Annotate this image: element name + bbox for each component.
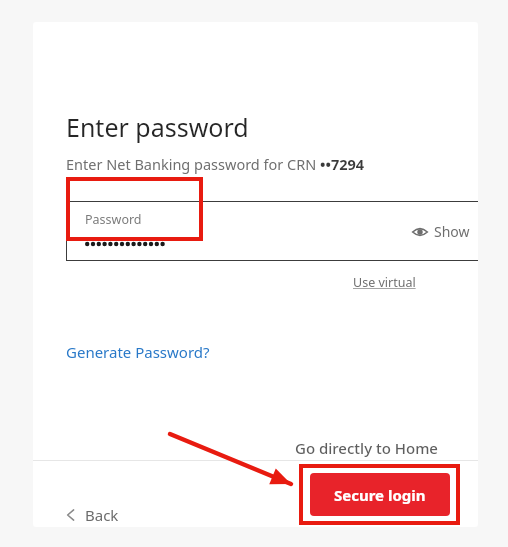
staticText: Password <box>85 211 142 228</box>
staticText: Generate Password? <box>66 342 210 362</box>
button[interactable]: Use virtual keypad <box>353 274 453 294</box>
staticText: Show <box>434 222 470 241</box>
staticText: Use virtual keypad <box>353 274 453 294</box>
staticText: Secure login <box>334 485 426 505</box>
button[interactable]: Generate Password? <box>66 342 210 362</box>
button[interactable]: Password <box>66 201 478 261</box>
button[interactable]: Secure login <box>310 473 450 516</box>
button[interactable]: Go directly to Home <box>295 438 438 458</box>
staticText: Enter Net Banking password for CRN ••729… <box>66 154 365 174</box>
button[interactable]: Show <box>412 222 470 241</box>
staticText: Enter password <box>66 110 249 144</box>
button[interactable]: Back <box>65 500 119 527</box>
staticText: Go directly to Home <box>295 438 438 458</box>
staticText: Back <box>85 505 119 525</box>
